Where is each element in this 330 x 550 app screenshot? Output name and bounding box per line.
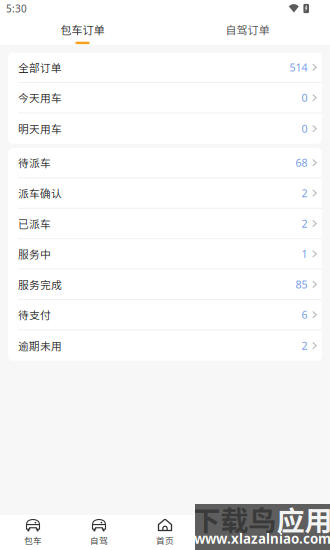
staticText: 服务完成	[18, 277, 62, 292]
staticText: 1	[301, 247, 307, 261]
button[interactable]: 今天用车	[8, 83, 322, 113]
staticText: 自驾	[90, 534, 108, 546]
staticText: 0	[301, 121, 307, 136]
button[interactable]: 包车订单	[0, 17, 165, 45]
button[interactable]: 已派车	[8, 209, 322, 239]
button[interactable]: 包车	[0, 515, 66, 550]
staticText: 自驾订单	[225, 22, 269, 37]
button[interactable]: 服务完成	[8, 270, 322, 300]
staticText: 包车订单	[60, 22, 104, 37]
staticText: 明天用车	[18, 121, 62, 136]
staticText: 全部订单	[18, 60, 62, 75]
staticText: 5:30	[6, 2, 27, 15]
staticText: 服务中	[18, 246, 51, 262]
staticText: 首页	[156, 534, 174, 546]
button[interactable]: 服务中	[8, 239, 322, 270]
staticText: 应用	[276, 499, 330, 539]
button[interactable]: 自驾订单	[165, 17, 330, 45]
staticText: 68	[295, 155, 307, 170]
staticText: 2	[301, 186, 307, 200]
staticText: 2	[301, 338, 307, 353]
staticText: 待派车	[18, 155, 51, 170]
staticText: 6	[301, 307, 307, 322]
staticText: 85	[295, 277, 307, 291]
staticText: www.xlazalniao.com	[194, 529, 330, 548]
button[interactable]: 待派车	[8, 148, 322, 178]
button[interactable]: 首页	[132, 515, 198, 550]
button[interactable]: 待支付	[8, 300, 322, 330]
staticText: 514	[289, 60, 307, 74]
staticText: 下载鸟	[192, 499, 276, 539]
staticText: 2	[301, 216, 307, 231]
staticText: 今天用车	[18, 90, 62, 105]
button[interactable]: 派车确认	[8, 178, 322, 209]
button[interactable]: 明天用车	[8, 113, 322, 144]
staticText: 包车	[24, 534, 42, 546]
staticText: 已派车	[18, 216, 51, 231]
staticText: 0	[301, 90, 307, 105]
button[interactable]: 逾期未用	[8, 330, 322, 361]
button[interactable]: 全部订单	[8, 53, 322, 83]
staticText: 待支付	[18, 307, 51, 322]
button[interactable]: 自驾	[66, 515, 132, 550]
staticText: 派车确认	[18, 185, 62, 201]
staticText: 逾期未用	[18, 338, 62, 353]
